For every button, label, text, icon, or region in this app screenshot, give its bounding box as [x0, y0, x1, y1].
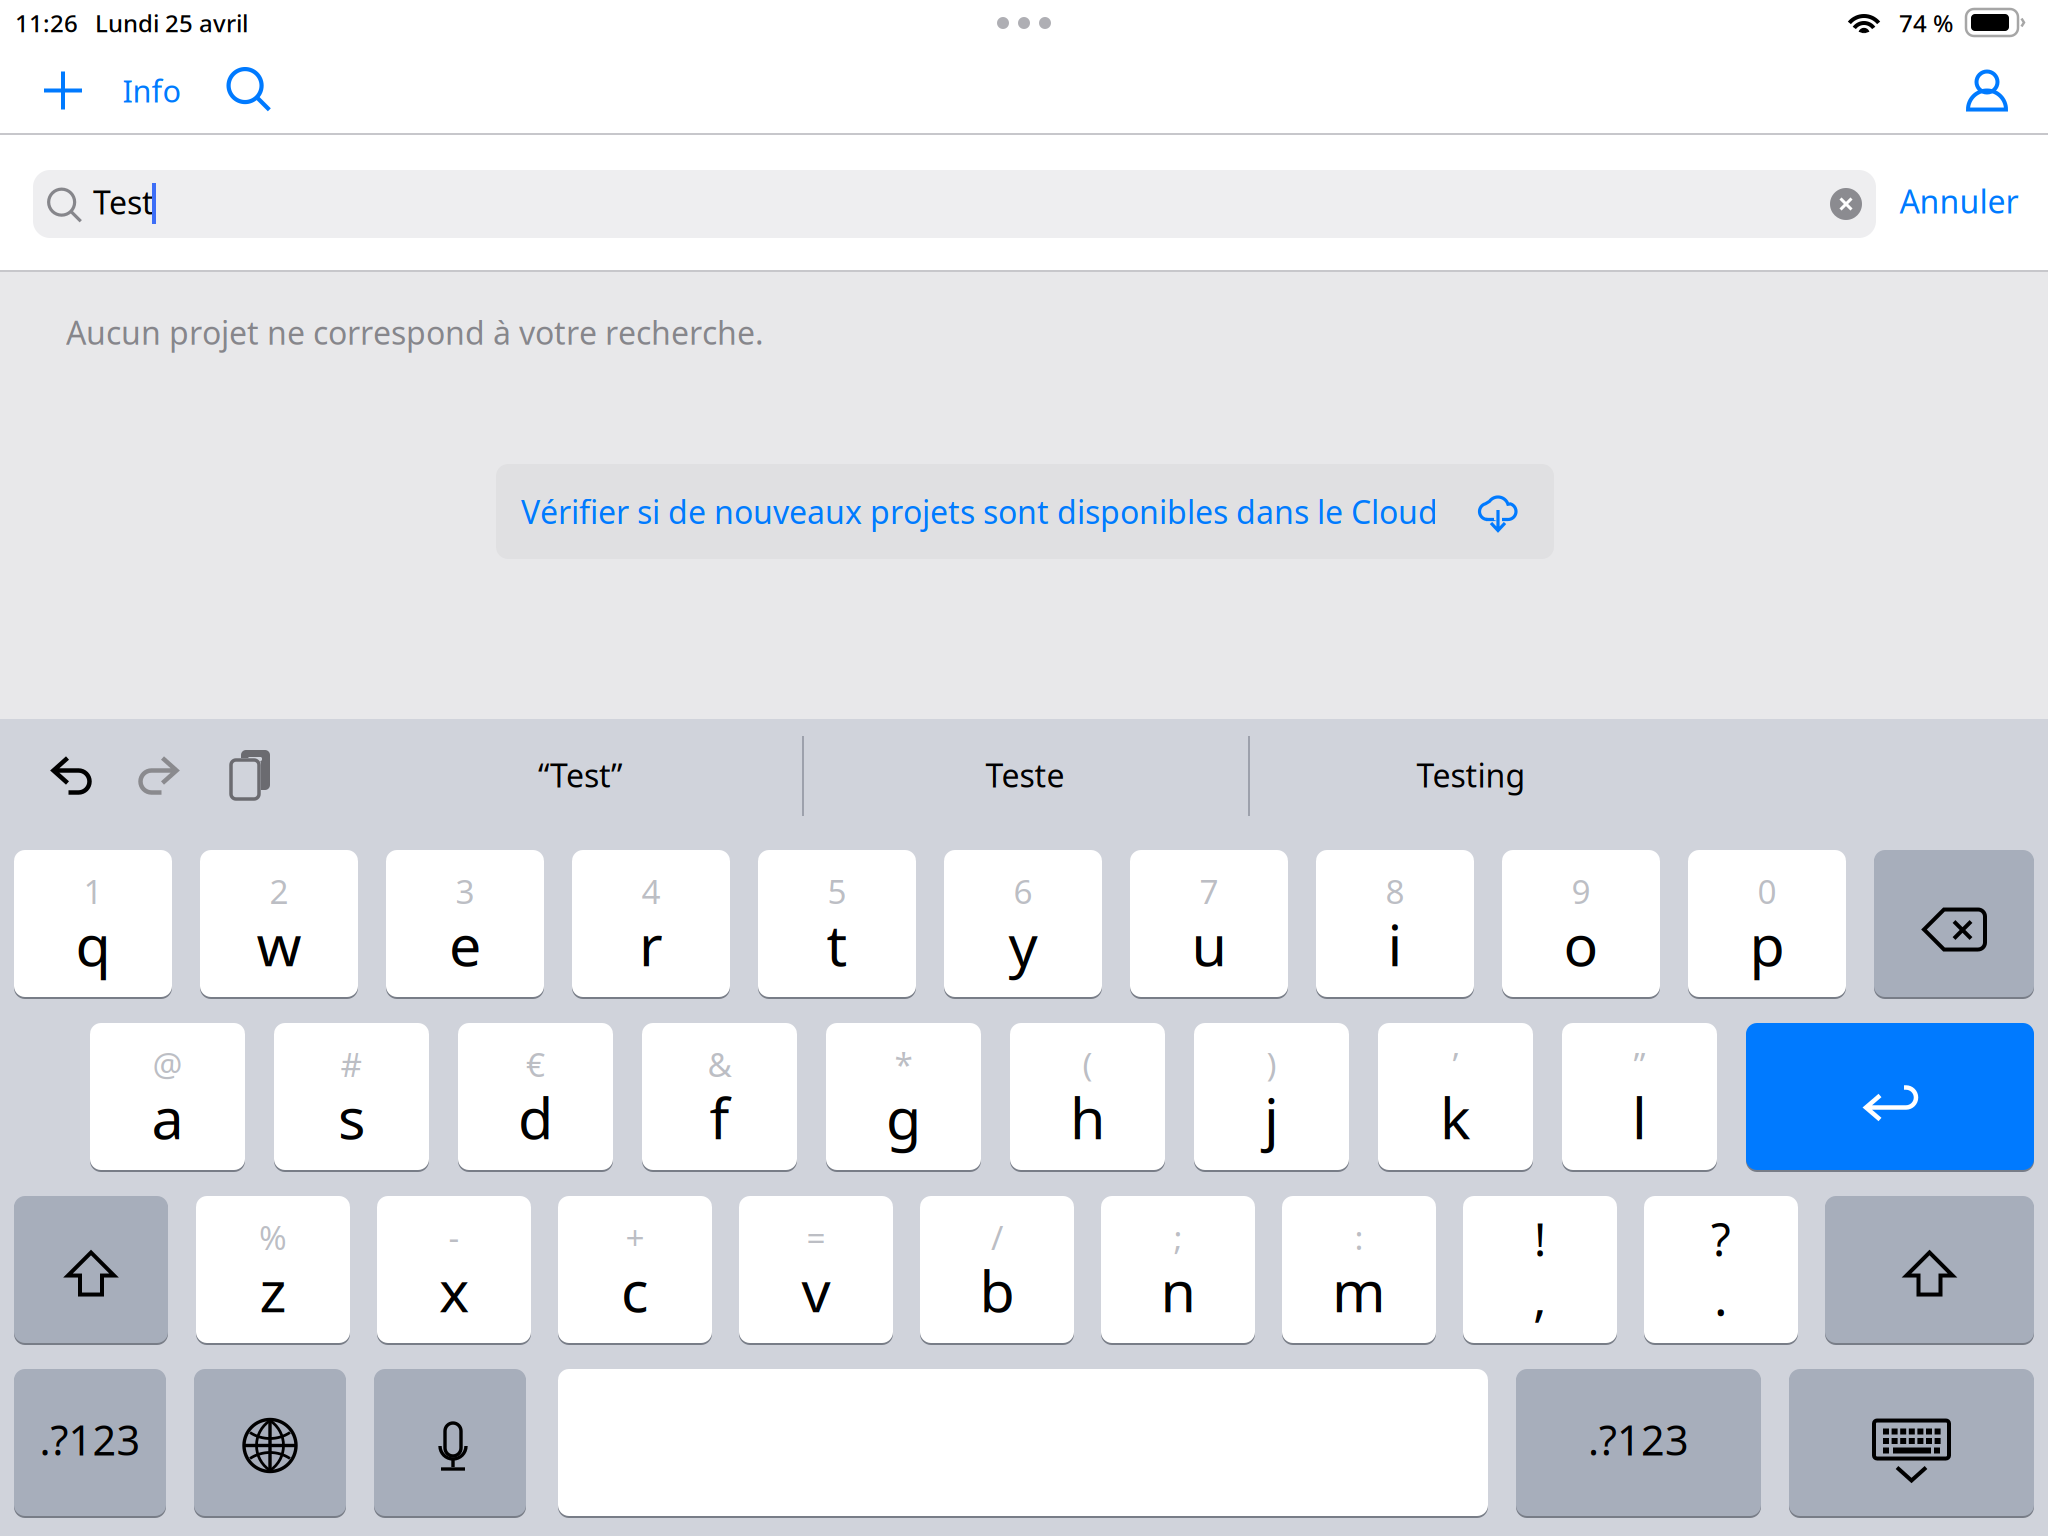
staticText: k — [1440, 1079, 1471, 1155]
staticText: ) — [1266, 1042, 1276, 1086]
button[interactable]: Rechercher — [217, 46, 283, 135]
button[interactable]: Espace — [558, 1369, 1488, 1518]
staticText: Info — [122, 70, 181, 111]
staticText: .?123 — [1588, 1412, 1689, 1467]
staticText: Lundi 25 avril — [95, 7, 248, 39]
staticText: € — [526, 1042, 545, 1086]
button[interactable]: a — [90, 1023, 245, 1172]
button[interactable]: Chiffres et symboles — [14, 1369, 166, 1518]
button[interactable]: v — [739, 1196, 893, 1345]
button[interactable]: p — [1688, 850, 1846, 999]
staticText: l — [1632, 1079, 1647, 1155]
button[interactable]: l — [1562, 1023, 1717, 1172]
staticText: h — [1070, 1079, 1105, 1155]
staticText: “Test” — [538, 754, 622, 796]
staticText: ? — [1711, 1209, 1731, 1269]
button[interactable]: Retour — [1746, 1023, 2034, 1172]
button[interactable]: t — [758, 850, 916, 999]
button[interactable]: Supprimer — [1874, 850, 2034, 999]
button[interactable]: d — [458, 1023, 613, 1172]
button[interactable]: y — [944, 850, 1102, 999]
staticText: ( — [1082, 1042, 1092, 1086]
staticText: Aucun projet ne correspond à votre reche… — [66, 311, 764, 353]
staticText: Teste — [985, 754, 1064, 796]
button[interactable]: r — [572, 850, 730, 999]
staticText: Test — [93, 181, 154, 223]
staticText: i — [1387, 906, 1402, 982]
staticText: q — [75, 906, 110, 982]
button[interactable]: s — [274, 1023, 429, 1172]
button[interactable]: Masquer le clavier — [1789, 1369, 2034, 1518]
button[interactable]: Annuler — [1884, 167, 2034, 235]
button[interactable]: . — [1644, 1196, 1798, 1345]
button[interactable]: g — [826, 1023, 981, 1172]
button[interactable]: j — [1194, 1023, 1349, 1172]
staticText: 8 — [1385, 869, 1404, 913]
staticText: @ — [152, 1042, 182, 1086]
staticText: a — [151, 1079, 183, 1155]
button[interactable]: e — [386, 850, 544, 999]
staticText: .?123 — [39, 1412, 140, 1467]
staticText: p — [1749, 906, 1784, 982]
staticText: d — [518, 1079, 553, 1155]
button[interactable]: b — [920, 1196, 1074, 1345]
button[interactable]: Annuler la frappe — [20, 725, 120, 825]
staticText: 4 — [641, 869, 660, 913]
button[interactable]: n — [1101, 1196, 1255, 1345]
button[interactable]: q — [14, 850, 172, 999]
staticText: & — [707, 1042, 731, 1086]
button[interactable]: z — [196, 1196, 350, 1345]
staticText: w — [256, 906, 301, 982]
staticText: 2 — [269, 869, 288, 913]
staticText: ; — [1173, 1215, 1182, 1259]
button[interactable]: Testing — [1250, 725, 1692, 825]
staticText: j — [1264, 1079, 1279, 1155]
staticText: f — [709, 1079, 729, 1155]
button[interactable]: Majuscule — [1825, 1196, 2034, 1345]
staticText: . — [1714, 1262, 1728, 1330]
staticText: % — [259, 1215, 287, 1259]
staticText: n — [1160, 1252, 1195, 1328]
staticText: z — [259, 1252, 286, 1328]
button[interactable]: Majuscule — [14, 1196, 168, 1345]
button[interactable]: Info — [112, 46, 192, 135]
button[interactable]: h — [1010, 1023, 1165, 1172]
button[interactable]: Chiffres et symboles — [1516, 1369, 1761, 1518]
staticText: t — [826, 906, 847, 982]
button[interactable]: Coller — [200, 725, 300, 825]
staticText: Vérifier si de nouveaux projets sont dis… — [521, 490, 1438, 533]
button[interactable]: w — [200, 850, 358, 999]
staticText: o — [1563, 906, 1598, 982]
button[interactable]: Clavier suivant — [194, 1369, 346, 1518]
button[interactable]: Nouveau projet — [24, 46, 102, 135]
button[interactable]: Rétablir la frappe — [110, 725, 210, 825]
staticText: m — [1332, 1252, 1386, 1328]
button[interactable]: c — [558, 1196, 712, 1345]
staticText: + — [625, 1215, 644, 1259]
staticText: ” — [1633, 1042, 1645, 1086]
staticText: 11:26 — [15, 7, 78, 39]
button[interactable]: k — [1378, 1023, 1533, 1172]
button[interactable]: f — [642, 1023, 797, 1172]
button[interactable]: “Test” — [370, 725, 790, 825]
staticText: ’ — [1452, 1042, 1458, 1086]
button[interactable]: m — [1282, 1196, 1436, 1345]
button[interactable]: Effacer le texte — [1812, 170, 1880, 238]
button[interactable]: Compte — [1949, 46, 2025, 135]
staticText: 9 — [1571, 869, 1590, 913]
button[interactable]: i — [1316, 850, 1474, 999]
button[interactable]: o — [1502, 850, 1660, 999]
button[interactable]: Dictée — [374, 1369, 526, 1518]
staticText: e — [449, 906, 481, 982]
staticText: 6 — [1013, 869, 1032, 913]
button[interactable]: Vérifier si de nouveaux projets sont dis… — [496, 464, 1554, 559]
button[interactable]: u — [1130, 850, 1288, 999]
staticText: 5 — [827, 869, 846, 913]
staticText: 1 — [83, 869, 102, 913]
staticText: 0 — [1757, 869, 1776, 913]
button[interactable]: Teste — [804, 725, 1246, 825]
button[interactable]: , — [1463, 1196, 1617, 1345]
staticText: s — [338, 1079, 365, 1155]
staticText: = — [806, 1215, 825, 1259]
button[interactable]: x — [377, 1196, 531, 1345]
